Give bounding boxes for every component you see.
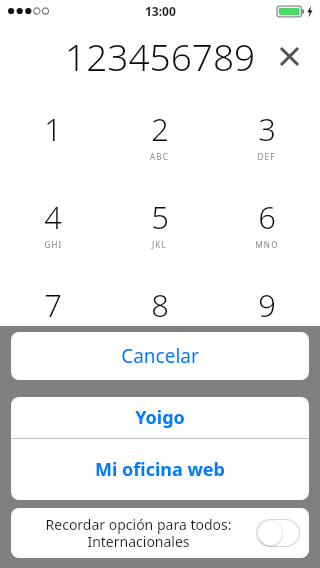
button[interactable]: 7	[0, 284, 106, 338]
button[interactable]: Recordar opción, desactivado	[256, 519, 300, 547]
button[interactable]: 4	[0, 196, 106, 250]
staticText: 5	[151, 196, 169, 238]
staticText: GHI	[44, 239, 63, 250]
staticText: DEF	[257, 151, 276, 162]
button[interactable]: 9	[213, 284, 320, 338]
staticText: 2	[151, 108, 169, 150]
button[interactable]: 5	[106, 196, 213, 250]
staticText: 123456789	[65, 31, 256, 81]
button[interactable]: 8	[106, 284, 213, 338]
button[interactable]: Yoigo	[11, 397, 309, 438]
staticText: 3	[258, 108, 276, 150]
staticText: 4	[44, 196, 62, 238]
staticText: 13:00	[145, 3, 176, 19]
button[interactable]: 3	[213, 108, 320, 162]
staticText: TUV	[150, 327, 169, 338]
button[interactable]: Borrar número	[272, 39, 306, 73]
staticText: WXYZ	[253, 327, 280, 338]
staticText: Recordar opción para todos: Internaciona…	[21, 515, 256, 551]
button[interactable]: 2	[106, 108, 213, 162]
button[interactable]: Recordar opción para todos: Internaciona…	[11, 508, 309, 558]
button[interactable]: 6	[213, 196, 320, 250]
staticText: 9	[258, 284, 276, 326]
staticText: 7	[44, 284, 62, 326]
staticText: 6	[258, 196, 276, 238]
staticText: JKL	[152, 239, 167, 250]
staticText: ABC	[150, 151, 169, 162]
button[interactable]: Mi oficina web	[11, 439, 309, 500]
staticText: PQRS	[40, 327, 66, 338]
button[interactable]: 1	[0, 108, 106, 150]
staticText: Mi oficina web	[95, 457, 225, 482]
button[interactable]: Cancelar	[11, 332, 309, 380]
staticText: MNO	[255, 239, 279, 250]
staticText: Yoigo	[135, 405, 185, 430]
staticText: 8	[151, 284, 169, 326]
staticText: Cancelar	[121, 343, 199, 369]
staticText: 1	[44, 108, 62, 150]
